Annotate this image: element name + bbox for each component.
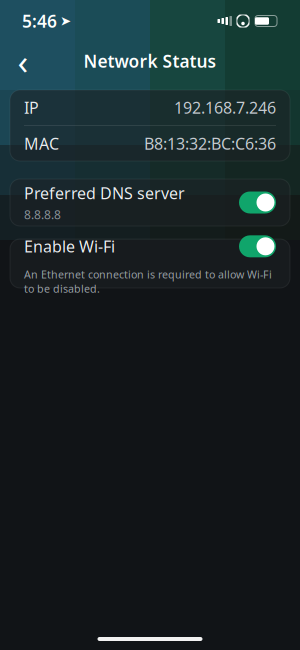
staticText: B8:13:32:BC:C6:36 [144,133,276,154]
staticText: Enable Wi-Fi [24,236,115,257]
staticText: 5:46 [22,9,57,32]
staticText: An Ethernet connection is required to al… [24,267,272,296]
button[interactable]: Enable Wi-Fi [10,239,290,288]
staticText: Network Status [83,49,216,72]
button[interactable]: Preferred DNS server [10,179,290,226]
staticText: MAC [24,133,59,154]
staticText: IP [24,97,39,118]
staticText: ➤ [60,13,71,28]
staticText: Preferred DNS server [24,182,185,204]
staticText: ‹ [17,38,28,84]
staticText: 192.168.7.246 [174,97,276,118]
staticText: 8.8.8.8 [24,207,61,223]
button[interactable]: Back [6,44,40,78]
